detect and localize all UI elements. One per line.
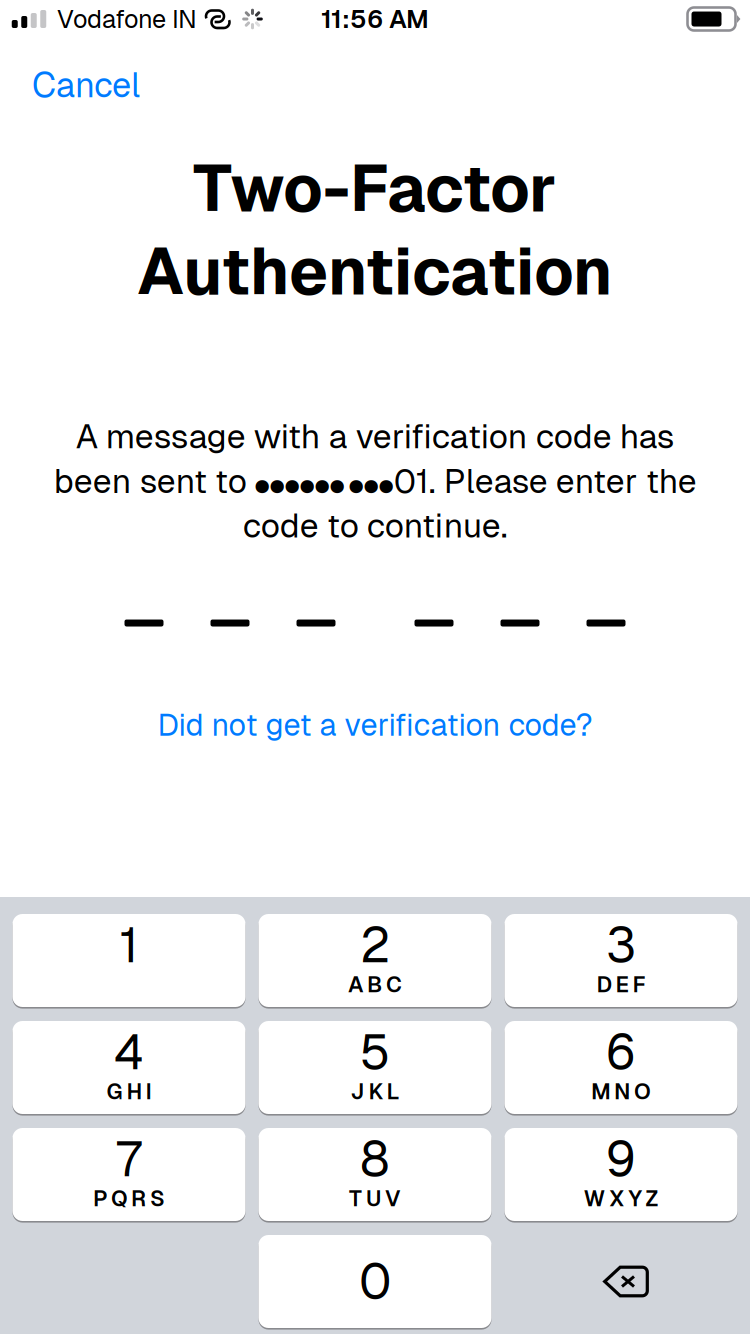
staticText: DEF: [596, 970, 645, 999]
staticText: ABC: [348, 970, 402, 999]
button[interactable]: 9: [504, 1128, 737, 1221]
button[interactable]: 1: [12, 914, 245, 1007]
staticText: 6: [605, 1020, 636, 1084]
button[interactable]: Did not get a verification code?: [140, 696, 610, 754]
staticText: 7: [116, 1127, 142, 1191]
staticText: WXYZ: [583, 1184, 658, 1213]
staticText: Vodafone IN: [57, 2, 197, 35]
staticText: 5: [359, 1020, 390, 1084]
staticText: 1: [119, 913, 138, 977]
staticText: 2: [360, 913, 390, 977]
button[interactable]: 0: [258, 1235, 491, 1328]
staticText: Authentication: [137, 229, 613, 314]
staticText: 4: [114, 1020, 144, 1084]
staticText: Did not get a verification code?: [157, 705, 592, 745]
staticText: 0: [359, 1250, 391, 1313]
button[interactable]: Delete: [504, 1235, 737, 1328]
staticText: 8: [360, 1127, 390, 1191]
button[interactable]: 7: [12, 1128, 245, 1221]
staticText: MNO: [591, 1077, 651, 1106]
button[interactable]: Cancel: [32, 56, 182, 114]
staticText: Cancel: [32, 63, 140, 107]
button[interactable]: 6: [504, 1021, 737, 1114]
button[interactable]: 5: [258, 1021, 491, 1114]
staticText: GHI: [106, 1077, 151, 1106]
staticText: A message with a verification code has b…: [53, 415, 696, 547]
staticText: 11:56 AM: [321, 2, 429, 35]
staticText: Two-Factor: [193, 146, 557, 230]
button[interactable]: 2: [258, 914, 491, 1007]
staticText: 3: [606, 913, 636, 977]
staticText: JKL: [350, 1077, 399, 1106]
staticText: 9: [605, 1127, 636, 1191]
button[interactable]: 3: [504, 914, 737, 1007]
button[interactable]: 8: [258, 1128, 491, 1221]
staticText: TUV: [349, 1184, 401, 1213]
staticText: PQRS: [93, 1184, 165, 1213]
button[interactable]: 4: [12, 1021, 245, 1114]
